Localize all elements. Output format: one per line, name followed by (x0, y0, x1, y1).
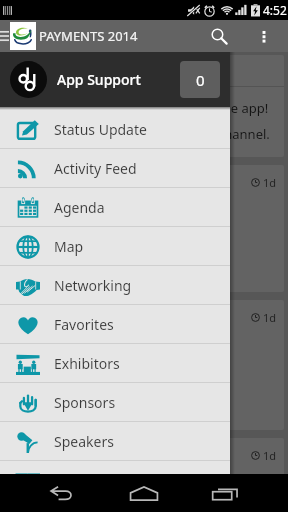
staticText: 4:52 (263, 2, 287, 18)
button[interactable]: Sponsors (0, 383, 230, 422)
staticText: the app! (218, 99, 269, 117)
staticText: Agenda (54, 198, 105, 217)
staticText: Sponsors (54, 393, 116, 412)
staticText: Status Update (54, 120, 147, 139)
button[interactable]: Exhibitors (0, 344, 230, 383)
button[interactable]: Networking (0, 266, 230, 305)
staticText: Activity Feed (54, 159, 137, 178)
staticText: App Support (57, 70, 141, 89)
staticText: 1d (263, 310, 277, 325)
button[interactable]: 0 (180, 61, 220, 98)
button[interactable]: Speakers (0, 422, 230, 461)
button[interactable]: Status Update (0, 110, 230, 149)
button[interactable]: Search (203, 20, 235, 52)
button[interactable]: Home (122, 475, 166, 511)
staticText: Networking (54, 276, 132, 295)
staticText: 1d (263, 175, 277, 190)
button[interactable]: Map (0, 227, 230, 266)
staticText: Exhibitors (54, 354, 120, 373)
staticText: Documents (54, 471, 130, 490)
staticText: Speakers (54, 432, 114, 451)
staticText: channel. (218, 125, 270, 143)
staticText: 1d (263, 448, 277, 463)
button[interactable]: Back (41, 475, 85, 511)
button[interactable]: Open navigation drawer (0, 25, 13, 47)
button[interactable]: More options (248, 20, 280, 52)
button[interactable]: Documents (0, 461, 230, 500)
staticText: 0 (196, 70, 205, 90)
staticText: Favorites (54, 315, 114, 334)
button[interactable]: Agenda (0, 188, 230, 227)
staticText: Map (54, 237, 84, 256)
button[interactable]: Recent apps (203, 475, 247, 511)
button[interactable]: App Support (0, 52, 230, 107)
staticText: PAYMENTS 2014 (39, 27, 138, 45)
button[interactable]: Favorites (0, 305, 230, 344)
button[interactable]: Activity Feed (0, 149, 230, 188)
